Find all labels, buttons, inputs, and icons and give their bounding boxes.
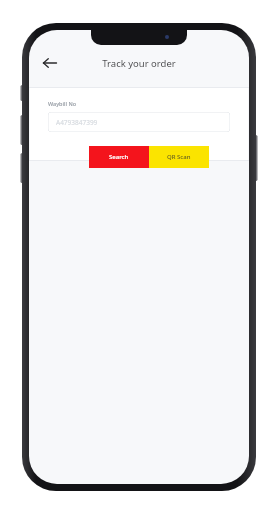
staticText: Search <box>109 153 129 161</box>
staticText: QR Scan <box>167 153 191 161</box>
staticText: Waybill No <box>48 100 77 107</box>
button[interactable]: Search <box>89 146 149 168</box>
button[interactable]: Back <box>38 51 62 75</box>
staticText: A4793847399 <box>56 118 98 127</box>
staticText: Track your order <box>102 57 176 70</box>
button[interactable]: QR Scan <box>149 146 209 168</box>
button[interactable]: A4793847399 <box>48 112 230 132</box>
